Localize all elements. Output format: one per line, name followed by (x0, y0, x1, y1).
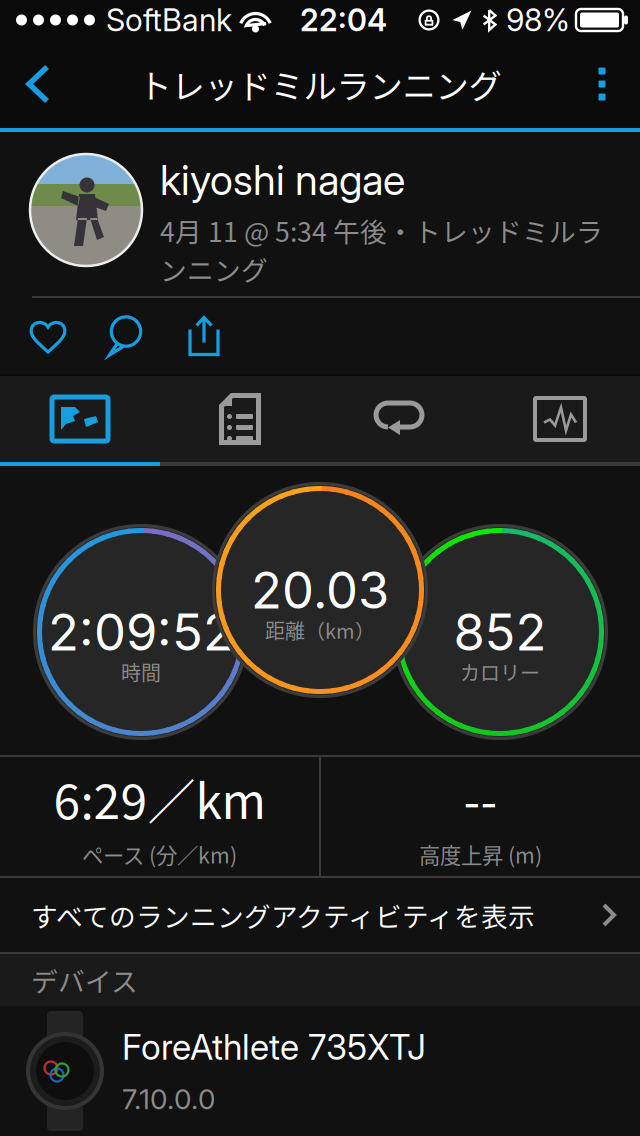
staticText: 852 (453, 601, 546, 663)
staticText: ForeAthlete 735XTJ (122, 1026, 426, 1068)
staticText: すべてのランニングアクティビティを表示 (31, 896, 535, 934)
button[interactable]: Laps (320, 376, 480, 462)
staticText: 98% (506, 1, 570, 38)
button[interactable]: Share (165, 298, 243, 374)
staticText: 高度上昇 (m) (419, 839, 542, 870)
staticText: 時間 (121, 657, 161, 686)
button[interactable]: Details (160, 376, 320, 462)
staticText: トレッドミルランニング (138, 60, 501, 108)
button[interactable]: More options (564, 40, 640, 128)
button[interactable]: Charts (480, 376, 640, 462)
staticText: 7.10.0.0 (122, 1082, 215, 1116)
staticText: kiyoshi nagae (160, 155, 405, 205)
staticText: 20.03 (251, 559, 389, 621)
button[interactable]: Back (0, 40, 76, 128)
staticText: カロリー (460, 657, 540, 686)
staticText: ペース (分／km) (82, 839, 237, 870)
staticText: -- (463, 763, 497, 833)
staticText: 6:29／km (53, 763, 265, 833)
button[interactable]: Like (9, 298, 87, 374)
staticText: デバイス (31, 961, 138, 999)
staticText: 4月 11 @ 5:34 午後・トレッドミルランニング (160, 211, 603, 288)
staticText: 22:04 (300, 1, 387, 38)
staticText: 距離（km） (265, 615, 375, 644)
staticText: SoftBank (106, 1, 232, 38)
staticText: 2:09:52 (48, 601, 234, 663)
button[interactable]: Map (0, 376, 160, 462)
button[interactable]: すべてのランニングアクティビティを表示 (0, 878, 640, 952)
button[interactable]: Comment (87, 298, 165, 374)
